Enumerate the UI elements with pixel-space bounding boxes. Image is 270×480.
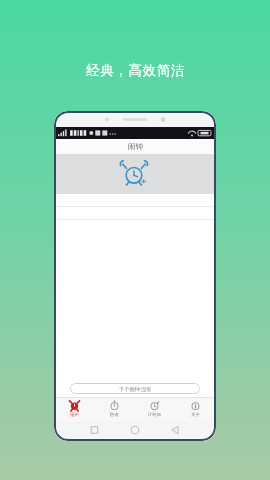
staticText: 计时器: [148, 412, 162, 418]
staticText: 关于: [191, 412, 200, 418]
button[interactable]: [54, 207, 216, 220]
button[interactable]: Add alarm: [122, 161, 148, 187]
button[interactable]: [54, 194, 216, 207]
button[interactable]: 下个闹钟:没有: [70, 383, 200, 394]
staticText: 秒表: [110, 412, 119, 418]
button[interactable]: 计时器: [134, 397, 175, 421]
staticText: 闹钟: [70, 412, 79, 418]
button[interactable]: 关于: [175, 397, 216, 421]
staticText: 经典，高效简洁: [86, 62, 185, 79]
staticText: 闹钟: [128, 142, 143, 151]
staticText: 下个闹钟:没有: [119, 385, 152, 392]
button[interactable]: 秒表: [94, 397, 134, 421]
button[interactable]: 闹钟: [54, 397, 94, 421]
